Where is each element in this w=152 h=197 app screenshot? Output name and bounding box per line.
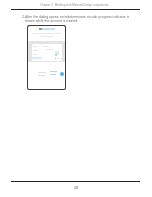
staticText: After the dialog opens, an indeterminate… (25, 15, 137, 23)
staticText: 28 (74, 185, 79, 190)
staticText: 2. (22, 15, 25, 19)
button[interactable]: Cancel (38, 72, 46, 76)
staticText: Chapter 3 Working with Material Design c… (40, 3, 109, 7)
button[interactable]: Sign up (50, 71, 57, 75)
other: Progress indicator (55, 51, 59, 55)
button[interactable]: Add (60, 72, 64, 76)
